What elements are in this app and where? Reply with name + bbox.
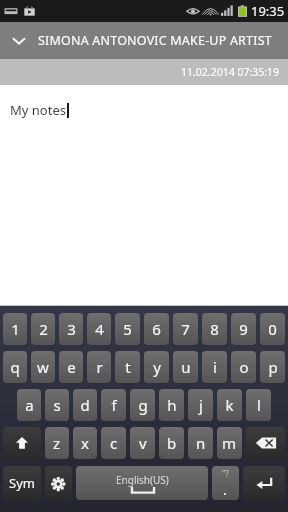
staticText: f bbox=[111, 395, 117, 415]
button[interactable]: m bbox=[217, 427, 242, 459]
button[interactable]: Space bbox=[76, 466, 208, 500]
staticText: v bbox=[139, 433, 147, 453]
button[interactable]: Shift bbox=[3, 427, 41, 459]
button[interactable]: d bbox=[73, 389, 97, 421]
button[interactable]: 3 bbox=[59, 313, 83, 345]
button[interactable]: w bbox=[31, 351, 55, 383]
staticText: e bbox=[67, 357, 76, 377]
button[interactable]: Enter bbox=[243, 466, 285, 500]
staticText: SIMONA ANTONOVIC MAKE-UP ARTIST bbox=[38, 32, 272, 49]
staticText: 1 bbox=[11, 319, 20, 339]
button[interactable]: Backspace bbox=[246, 427, 285, 459]
staticText: c bbox=[110, 433, 118, 453]
button[interactable]: s bbox=[45, 389, 69, 421]
button[interactable]: Punctuation bbox=[212, 466, 239, 500]
staticText: p bbox=[268, 357, 278, 377]
button[interactable]: g bbox=[130, 389, 155, 421]
staticText: s bbox=[53, 395, 61, 415]
button[interactable]: 2 bbox=[31, 313, 55, 345]
button[interactable]: f bbox=[101, 389, 126, 421]
button[interactable]: 4 bbox=[87, 313, 111, 345]
staticText: 19:35 bbox=[251, 2, 285, 20]
staticText: "? bbox=[222, 468, 229, 479]
staticText: r bbox=[96, 357, 103, 377]
button[interactable]: j bbox=[188, 389, 213, 421]
staticText: 3 bbox=[67, 319, 76, 339]
staticText: Sym bbox=[9, 474, 35, 492]
button[interactable]: 0 bbox=[260, 313, 285, 345]
staticText: l bbox=[257, 395, 261, 415]
button[interactable]: 9 bbox=[231, 313, 256, 345]
staticText: . bbox=[223, 479, 228, 499]
button[interactable]: Collapse bbox=[0, 22, 38, 59]
staticText: 8 bbox=[210, 319, 219, 339]
button[interactable]: q bbox=[3, 351, 27, 383]
button[interactable]: u bbox=[173, 351, 198, 383]
button[interactable]: n bbox=[188, 427, 213, 459]
button[interactable]: e bbox=[59, 351, 83, 383]
button[interactable]: r bbox=[87, 351, 111, 383]
button[interactable]: 7 bbox=[173, 313, 198, 345]
staticText: English(US) bbox=[116, 473, 169, 487]
button[interactable]: k bbox=[217, 389, 242, 421]
staticText: t bbox=[125, 357, 131, 377]
button[interactable]: 5 bbox=[115, 313, 140, 345]
button[interactable]: b bbox=[159, 427, 184, 459]
staticText: z bbox=[53, 433, 61, 453]
staticText: 11.02.2014 07:35:19 bbox=[181, 65, 280, 79]
staticText: g bbox=[138, 395, 148, 415]
staticText: 0 bbox=[268, 319, 277, 339]
staticText: o bbox=[239, 357, 249, 377]
button[interactable]: a bbox=[17, 389, 41, 421]
staticText: 6 bbox=[152, 319, 161, 339]
button[interactable]: p bbox=[260, 351, 285, 383]
staticText: My notes bbox=[10, 101, 66, 119]
staticText: q bbox=[10, 357, 20, 377]
button[interactable]: i bbox=[202, 351, 227, 383]
staticText: a bbox=[25, 395, 34, 415]
button[interactable]: My notes bbox=[0, 85, 288, 305]
staticText: 4 bbox=[95, 319, 104, 339]
staticText: x bbox=[81, 433, 89, 453]
button[interactable]: x bbox=[73, 427, 97, 459]
button[interactable]: Settings bbox=[45, 466, 72, 500]
staticText: i bbox=[213, 357, 217, 377]
staticText: h bbox=[167, 395, 177, 415]
button[interactable]: 1 bbox=[3, 313, 27, 345]
staticText: 5 bbox=[123, 319, 132, 339]
button[interactable]: 6 bbox=[144, 313, 169, 345]
staticText: 9 bbox=[239, 319, 248, 339]
button[interactable]: y bbox=[144, 351, 169, 383]
button[interactable]: o bbox=[231, 351, 256, 383]
staticText: k bbox=[225, 395, 234, 415]
button[interactable]: z bbox=[45, 427, 69, 459]
button[interactable]: t bbox=[115, 351, 140, 383]
button[interactable]: Sym bbox=[3, 466, 41, 500]
staticText: d bbox=[80, 395, 90, 415]
staticText: u bbox=[181, 357, 191, 377]
staticText: y bbox=[153, 357, 161, 377]
button[interactable]: h bbox=[159, 389, 184, 421]
staticText: 7 bbox=[181, 319, 190, 339]
staticText: w bbox=[37, 357, 49, 377]
staticText: 2 bbox=[39, 319, 48, 339]
button[interactable]: 8 bbox=[202, 313, 227, 345]
staticText: m bbox=[222, 433, 237, 453]
staticText: b bbox=[167, 433, 177, 453]
staticText: j bbox=[199, 395, 203, 415]
button[interactable]: c bbox=[101, 427, 126, 459]
button[interactable]: v bbox=[130, 427, 155, 459]
button[interactable]: l bbox=[246, 389, 271, 421]
staticText: n bbox=[196, 433, 206, 453]
